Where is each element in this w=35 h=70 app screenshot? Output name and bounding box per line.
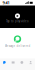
button[interactable]: Chats bbox=[0, 58, 9, 70]
staticText: Message delivered bbox=[4, 44, 30, 48]
staticText: Tap to play video bbox=[6, 19, 29, 23]
staticText: 9:41 bbox=[3, 0, 10, 5]
button[interactable]: Camera bbox=[9, 58, 18, 70]
button[interactable]: Profile bbox=[26, 58, 35, 70]
button[interactable]: Play video bbox=[15, 13, 20, 18]
button[interactable]: Status bbox=[17, 58, 26, 70]
